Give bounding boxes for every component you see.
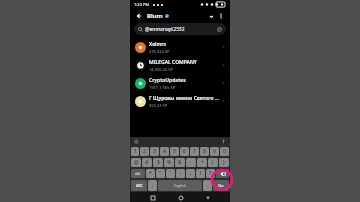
button[interactable]: Back <box>134 11 144 21</box>
staticText: CryptoUpdates <box>149 77 186 84</box>
button[interactable]: Voice input <box>220 138 227 145</box>
staticText: English <box>174 183 186 188</box>
button[interactable]: 8 <box>200 147 209 156</box>
button[interactable]: % <box>164 158 174 167</box>
button[interactable]: CryptoUpdates <box>130 74 230 92</box>
staticText: MILEGAL COMPANY <box>149 59 197 66</box>
button[interactable]: English <box>158 180 202 191</box>
staticText: : <box>180 170 182 177</box>
button[interactable]: 3 <box>150 147 159 156</box>
staticText: @enmanayt2332 <box>145 26 216 33</box>
button[interactable]: 5 <box>170 147 179 156</box>
staticText: # <box>145 159 149 166</box>
button[interactable]: $ <box>153 158 163 167</box>
button[interactable]: =\< <box>131 169 145 178</box>
staticText: > <box>222 80 225 87</box>
button[interactable]: @enmanayt2332 <box>134 23 226 35</box>
button[interactable]: 9 <box>210 147 219 156</box>
button[interactable]: + <box>197 158 207 167</box>
staticText: Go <box>218 183 224 188</box>
staticText: , <box>152 182 154 189</box>
staticText: > <box>222 98 225 105</box>
button[interactable]: ; <box>186 169 195 178</box>
button[interactable]: 2 <box>140 147 149 156</box>
button[interactable]: . <box>203 180 212 191</box>
staticText: $ <box>157 159 160 166</box>
staticText: ! <box>200 170 202 177</box>
button[interactable]: Clear <box>216 26 222 32</box>
staticText: > <box>222 62 225 69</box>
staticText: % <box>167 159 172 166</box>
staticText: ( <box>212 159 214 166</box>
button[interactable]: ! <box>196 169 205 178</box>
staticText: * <box>149 170 152 177</box>
staticText: ? <box>209 170 212 177</box>
staticText: 2 <box>143 148 146 155</box>
button[interactable]: ' <box>166 169 175 178</box>
button[interactable]: Г Щуровы имени Святого Ба... <box>130 92 230 110</box>
button[interactable]: Recents <box>148 193 157 202</box>
staticText: ' <box>170 170 172 177</box>
staticText: ; <box>190 170 192 177</box>
button[interactable]: # <box>142 158 152 167</box>
button[interactable]: Go <box>213 180 229 191</box>
staticText: 276,324 SP <box>149 49 170 54</box>
button[interactable]: Expand <box>206 11 216 21</box>
staticText: 4 <box>163 148 166 155</box>
staticText: 14,555.42 SP <box>149 67 173 72</box>
button[interactable]: 1 <box>131 147 139 156</box>
button[interactable]: 0 <box>220 147 229 156</box>
staticText: 7 <box>193 148 196 155</box>
button[interactable]: " <box>156 169 165 178</box>
staticText: Xelmrs <box>149 41 166 48</box>
staticText: 1 <box>134 148 137 155</box>
button[interactable]: & <box>175 158 185 167</box>
button[interactable]: Backspace <box>216 169 229 178</box>
staticText: @ <box>134 159 139 166</box>
button[interactable]: Home <box>176 193 185 202</box>
staticText: 0 <box>223 148 226 155</box>
button[interactable]: Xelmrs <box>130 38 230 56</box>
staticText: =\< <box>135 171 141 176</box>
button[interactable]: 4 <box>160 147 169 156</box>
button[interactable]: Keyboard settings <box>133 138 140 145</box>
staticText: > <box>222 44 225 51</box>
staticText: 3 <box>153 148 156 155</box>
staticText: Г Щуровы имени Святого Ба... <box>149 95 222 102</box>
staticText: ABC <box>136 183 143 188</box>
button[interactable]: - <box>186 158 196 167</box>
staticText: - <box>190 159 192 166</box>
staticText: Blum <box>147 12 163 20</box>
button[interactable]: More options <box>216 11 226 21</box>
staticText: & <box>178 159 182 166</box>
staticText: + <box>201 159 204 166</box>
staticText: 8 <box>203 148 206 155</box>
button[interactable]: MILEGAL COMPANY <box>130 56 230 74</box>
staticText: 5 <box>173 148 176 155</box>
button[interactable]: , <box>148 180 157 191</box>
staticText: 1:23 PM <box>134 2 150 7</box>
staticText: . <box>207 182 209 189</box>
button[interactable]: Back <box>203 193 212 202</box>
button[interactable]: ? <box>206 169 215 178</box>
staticText: 1951,1,555 SP <box>149 85 176 90</box>
button[interactable]: ( <box>208 158 218 167</box>
button[interactable]: 6 <box>180 147 189 156</box>
staticText: " <box>159 170 162 177</box>
button[interactable]: @ <box>131 158 141 167</box>
button[interactable]: ) <box>219 158 229 167</box>
staticText: 555,23 SP <box>149 103 168 108</box>
button[interactable]: 7 <box>190 147 199 156</box>
staticText: ) <box>223 159 225 166</box>
staticText: 6 <box>183 148 186 155</box>
staticText: 9 <box>213 148 216 155</box>
button[interactable]: ABC <box>131 180 147 191</box>
button[interactable]: * <box>146 169 155 178</box>
button[interactable]: : <box>176 169 185 178</box>
